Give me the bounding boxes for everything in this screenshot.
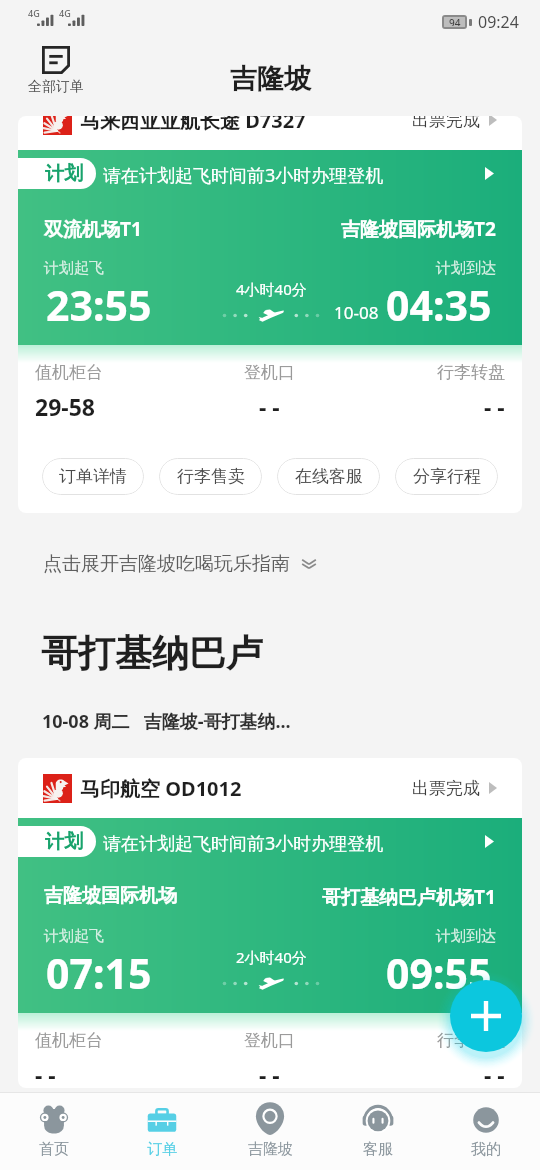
staticText: 吉隆坡 <box>230 62 311 96</box>
staticText: 登机口 <box>244 1030 295 1051</box>
button[interactable]: 首页 <box>0 1093 108 1170</box>
staticText: 点击展开吉隆坡吃喝玩乐指南 <box>43 552 290 576</box>
staticText: 行李售卖 <box>177 466 245 487</box>
staticText: 吉隆坡国际机场 <box>44 884 177 908</box>
staticText: 双流机场T1 <box>44 216 142 242</box>
staticText: 09:24 <box>478 11 519 33</box>
button[interactable]: Add trip <box>450 980 522 1052</box>
staticText: 2小时40分 <box>236 947 307 967</box>
button[interactable]: 吉隆坡 <box>216 1093 324 1170</box>
button[interactable]: 客服 <box>324 1093 432 1170</box>
staticText: 全部订单 <box>28 78 84 96</box>
staticText: 吉隆坡 <box>248 1140 293 1159</box>
staticText: 客服 <box>363 1140 393 1159</box>
staticText: 登机口 <box>244 362 295 383</box>
staticText: 4小时40分 <box>236 279 307 299</box>
staticText: 订单 <box>147 1140 177 1159</box>
staticText: 吉隆坡国际机场T2 <box>341 216 496 242</box>
staticText: 行李转盘 <box>437 1030 505 1051</box>
staticText: 计划起飞 <box>44 927 104 946</box>
staticText: - - <box>259 391 280 422</box>
staticText: - - <box>484 391 505 422</box>
staticText: 07:15 <box>46 945 152 1001</box>
staticText: 10-08 周二 吉隆坡-哥打基纳... <box>42 709 291 734</box>
button[interactable]: 我的 <box>432 1093 540 1170</box>
staticText: 计划到达 <box>436 259 496 278</box>
staticText: 4G <box>28 7 40 19</box>
staticText: 计划起飞 <box>44 259 104 278</box>
staticText: 马印航空 OD1012 <box>80 775 242 802</box>
staticText: 94 <box>449 16 461 26</box>
button[interactable]: 马来西亚亚航长途 D7327 <box>18 116 522 513</box>
staticText: 计划 <box>45 830 83 854</box>
staticText: 订单详情 <box>59 466 127 487</box>
staticText: 我的 <box>471 1140 501 1159</box>
staticText: 出票完成 <box>412 778 480 799</box>
staticText: 4G <box>59 7 71 19</box>
staticText: 计划到达 <box>436 927 496 946</box>
button[interactable]: 订单详情 <box>42 458 144 495</box>
staticText: 值机柜台 <box>35 1030 103 1051</box>
staticText: 04:35 <box>386 277 492 333</box>
staticText: - - <box>484 1059 505 1088</box>
button[interactable]: 订单 <box>108 1093 216 1170</box>
staticText: 分享行程 <box>413 466 481 487</box>
button[interactable]: 全部订单 <box>24 46 88 96</box>
button[interactable]: 在线客服 <box>277 458 380 495</box>
button[interactable]: 马印航空 OD1012 <box>18 758 522 1088</box>
staticText: 出票完成 <box>412 116 480 131</box>
staticText: 行李转盘 <box>437 362 505 383</box>
staticText: 29-58 <box>35 391 95 422</box>
staticText: 请在计划起飞时间前3小时办理登机 <box>103 163 384 188</box>
button[interactable]: 分享行程 <box>395 458 498 495</box>
staticText: - - <box>35 1059 56 1088</box>
staticText: 马来西亚亚航长途 D7327 <box>80 116 306 134</box>
staticText: 23:55 <box>46 277 152 333</box>
staticText: - - <box>259 1059 280 1088</box>
staticText: 请在计划起飞时间前3小时办理登机 <box>103 831 384 856</box>
button[interactable]: 行李售卖 <box>159 458 262 495</box>
button[interactable]: 点击展开吉隆坡吃喝玩乐指南 <box>35 548 326 580</box>
staticText: 09:55 <box>386 945 492 1001</box>
staticText: 计划 <box>45 162 83 186</box>
staticText: 首页 <box>39 1140 69 1159</box>
staticText: 10-08 <box>334 301 379 324</box>
staticText: 哥打基纳巴卢机场T1 <box>322 884 496 910</box>
staticText: 在线客服 <box>295 466 363 487</box>
staticText: 哥打基纳巴卢 <box>41 630 263 677</box>
staticText: 值机柜台 <box>35 362 103 383</box>
